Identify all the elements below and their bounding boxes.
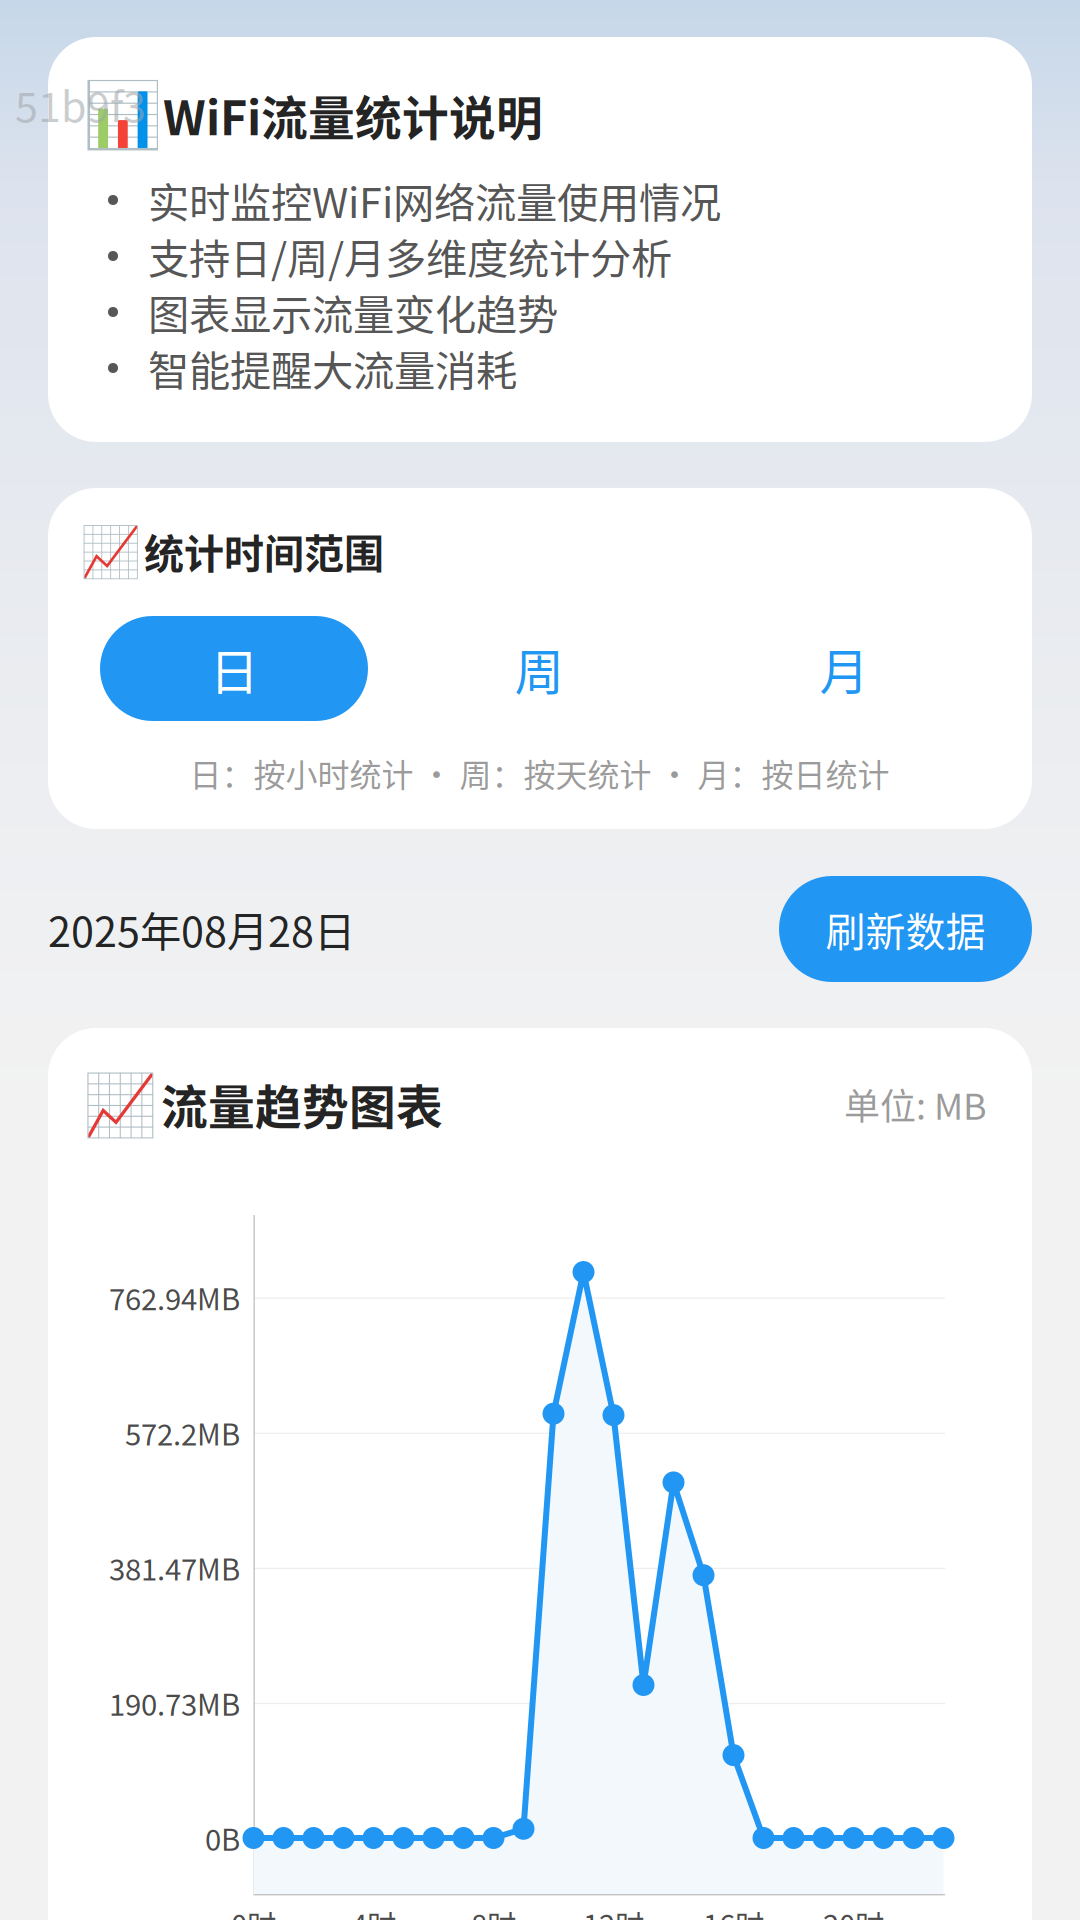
staticText: 572.2MB: [125, 1411, 240, 1454]
staticText: WiFi流量统计说明: [163, 81, 543, 149]
staticText: 📊: [83, 77, 163, 152]
staticText: 0时: [231, 1903, 276, 1920]
staticText: 周: [514, 633, 563, 704]
button[interactable]: 月: [691, 616, 996, 721]
staticText: 📈: [82, 1070, 157, 1140]
staticText: 日：按小时统计 · 周：按天统计 · 月：按日统计: [189, 750, 889, 796]
staticText: 月: [819, 633, 868, 704]
staticText: 12时: [583, 1903, 644, 1920]
staticText: 190.73MB: [109, 1682, 240, 1724]
staticText: 支持日/周/月多维度统计分析: [148, 226, 672, 286]
staticText: 日: [209, 633, 258, 704]
staticText: 51b9f3: [15, 74, 146, 134]
staticText: 4时: [351, 1903, 396, 1920]
staticText: 流量趋势图表: [161, 1070, 443, 1138]
staticText: 刷新数据: [825, 900, 985, 958]
staticText: 8时: [471, 1903, 516, 1920]
button[interactable]: 日: [81, 616, 386, 721]
staticText: 📈: [79, 523, 140, 581]
staticText: 图表显示流量变化趋势: [148, 282, 558, 342]
staticText: 0B: [205, 1817, 240, 1859]
staticText: 2025年08月28日: [48, 899, 355, 959]
staticText: 381.47MB: [109, 1547, 240, 1589]
staticText: 762.94MB: [109, 1276, 240, 1319]
staticText: 智能提醒大流量消耗: [148, 338, 517, 398]
button[interactable]: 刷新数据: [779, 876, 1032, 982]
staticText: 统计时间范围: [144, 522, 384, 580]
staticText: 20时: [823, 1903, 884, 1920]
staticText: 16时: [703, 1903, 764, 1920]
staticText: 实时监控WiFi网络流量使用情况: [148, 170, 721, 230]
button[interactable]: 周: [386, 616, 691, 721]
staticText: 单位: MB: [844, 1078, 987, 1130]
